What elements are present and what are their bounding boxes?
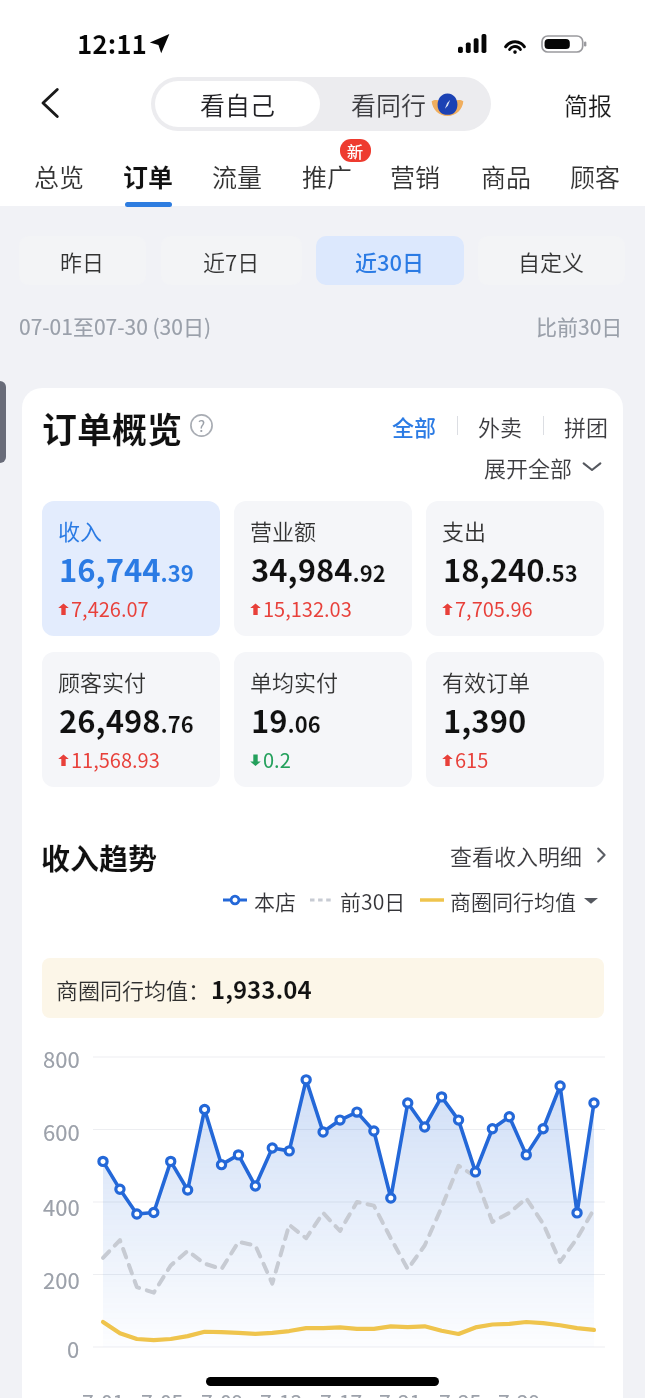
staticText: 有效订单 [442,665,531,697]
staticText: 7,426.07 [71,594,149,623]
staticText: 全部 [392,410,437,440]
staticText: 11,568.93 [71,745,160,774]
button[interactable]: 顾客实付 [42,652,220,787]
staticText: 0.2 [263,745,291,774]
staticText: 16,744.39 [59,546,194,591]
button[interactable]: 自定义 [478,236,625,285]
button[interactable]: Help [190,414,213,437]
staticText: 新 [347,139,364,162]
button[interactable]: 全部 [388,410,440,440]
button[interactable]: 外卖 [474,410,526,440]
staticText: 收入 [58,514,103,546]
staticText: 看自己 [200,86,276,122]
staticText: 15,132.03 [263,594,352,623]
staticText: 自定义 [518,245,585,277]
staticText: 商品 [481,158,532,194]
button[interactable]: 收入 [42,501,220,636]
button[interactable]: 营业额 [234,501,412,636]
button[interactable]: 昨日 [19,236,146,285]
button[interactable]: 商品 [472,158,540,210]
staticText: 7-13 [260,1387,303,1398]
staticText: 1,390 [443,697,527,742]
staticText: 7-17 [320,1387,363,1398]
staticText: 推广 [302,158,353,194]
staticText: 单均实付 [250,665,339,697]
button[interactable]: 订单 [114,158,182,210]
button[interactable]: 近30日 [316,236,464,285]
button[interactable]: 展开全部 [484,451,603,481]
staticText: ? [198,415,206,437]
staticText: 7-05 [141,1387,184,1398]
staticText: 200 [43,1263,80,1293]
button[interactable]: Back [26,79,74,127]
staticText: 本店 [254,886,296,914]
staticText: 收入趋势 [41,836,158,878]
staticText: 营销 [390,158,441,194]
staticText: 400 [43,1190,80,1220]
button[interactable]: 看同行 [324,77,491,131]
button[interactable]: 营销 [381,158,449,210]
button[interactable]: Open side panel [0,381,6,463]
button[interactable]: 看自己 [155,81,320,127]
staticText: 7-21 [379,1387,422,1398]
button[interactable]: 拼团 [560,410,612,440]
staticText: 600 [43,1115,80,1145]
staticText: 12:11 [77,24,147,62]
button[interactable]: 单均实付 [234,652,412,787]
staticText: 1,933.04 [211,971,312,1006]
staticText: 800 [43,1042,80,1072]
staticText: 查看收入明细 [450,839,583,871]
staticText: 拼团 [564,410,609,440]
staticText: 26,498.76 [59,697,194,742]
staticText: 07-01至07-30 (30日) [19,311,212,341]
button[interactable]: 有效订单 [426,652,604,787]
button[interactable]: 总览 [25,158,93,210]
staticText: 0 [67,1332,80,1362]
staticText: 展开全部 [484,451,573,481]
staticText: 总览 [34,158,85,194]
staticText: 外卖 [478,410,523,440]
staticText: 615 [455,745,489,774]
staticText: 7-01 [82,1387,125,1398]
staticText: 19.06 [251,697,321,742]
button[interactable]: 近7日 [161,236,302,285]
staticText: 顾客 [570,158,621,194]
button[interactable]: 顾客 [561,158,629,210]
button[interactable]: 简报 [552,80,624,128]
staticText: 顾客实付 [58,665,147,697]
staticText: 7,705.96 [455,594,533,623]
staticText: 前30日 [340,886,406,914]
staticText: 7-09 [201,1387,244,1398]
button[interactable]: 流量 [203,158,271,210]
staticText: 7-29 [498,1387,541,1398]
button[interactable]: 查看收入明细 [450,838,611,872]
staticText: 商圈同行均值： [56,973,211,1005]
staticText: 近7日 [203,245,260,277]
staticText: 昨日 [60,245,105,277]
staticText: 18,240.53 [443,546,578,591]
staticText: 34,984.92 [251,546,386,591]
staticText: 商圈同行均值 [450,886,576,914]
staticText: 订单概览 [42,402,183,453]
staticText: 流量 [212,158,263,194]
button[interactable]: 推广 [293,158,361,210]
staticText: 支出 [442,514,487,546]
staticText: 营业额 [250,514,317,546]
staticText: 比前30日 [536,311,623,341]
staticText: 看同行 [351,86,427,122]
staticText: 近30日 [355,245,425,277]
button[interactable]: 支出 [426,501,604,636]
staticText: 简报 [564,87,612,122]
staticText: 订单 [123,158,174,194]
staticText: 7-25 [439,1387,482,1398]
